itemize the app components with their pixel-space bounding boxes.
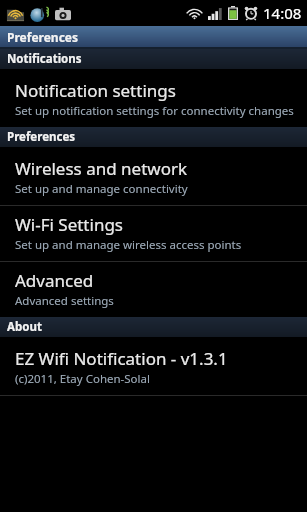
button[interactable]: Notification settings <box>0 72 307 127</box>
staticText: Advanced settings <box>15 293 114 309</box>
staticText: EZ Wifi Notification - v1.3.1 <box>15 347 228 370</box>
button[interactable]: Wireless and network <box>0 150 307 205</box>
staticText: Set up and manage connectivity <box>15 181 188 197</box>
button[interactable]: Wi-Fi Settings <box>0 206 307 261</box>
staticText: Wi-Fi Settings <box>15 213 123 236</box>
staticText: (c)2011, Etay Cohen-Solal <box>15 371 150 387</box>
staticText: Set up and manage wireless access points <box>15 237 242 253</box>
button[interactable]: Advanced <box>0 262 307 317</box>
staticText: About <box>7 319 42 335</box>
staticText: Advanced <box>15 269 94 292</box>
staticText: Set up notification settings for connect… <box>15 103 294 119</box>
staticText: Preferences <box>7 129 76 145</box>
staticText: Preferences <box>7 29 79 45</box>
staticText: Wireless and network <box>15 157 188 180</box>
staticText: 14:08 <box>263 3 302 23</box>
staticText: Notification settings <box>15 79 176 102</box>
staticText: Notifications <box>7 51 82 67</box>
button[interactable]: EZ Wifi Notification - v1.3.1 <box>0 340 307 395</box>
